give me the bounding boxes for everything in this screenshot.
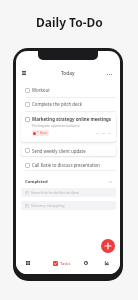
staticText: Marketing strategy online meetings	[32, 116, 112, 122]
staticText: Complete the pitch deck	[32, 101, 82, 107]
button[interactable]: Workout	[16, 83, 120, 97]
button[interactable]: More options	[104, 68, 115, 80]
button[interactable]: Schedule	[77, 255, 95, 271]
staticText: Completed	[25, 179, 48, 185]
button[interactable]: Task action	[101, 131, 105, 136]
button[interactable]: Complete the pitch deck	[16, 97, 120, 111]
staticText: Call Katie to discuss presentation	[32, 162, 100, 168]
button[interactable]: Task action	[107, 131, 111, 136]
button[interactable]: Call Katie to discuss presentation	[16, 158, 120, 172]
button[interactable]: Statistics	[98, 255, 116, 271]
staticText: Workout	[32, 87, 50, 93]
staticText: Tasks	[60, 261, 71, 266]
button[interactable]: Grocery shopping	[21, 201, 116, 210]
staticText: Send weekly client update	[32, 148, 86, 154]
button[interactable]: Marketing strategy online meetings	[21, 113, 116, 142]
staticText: Daily To-Do	[36, 14, 103, 30]
staticText: Today	[61, 70, 75, 77]
button[interactable]: Menu	[19, 67, 29, 79]
staticText: 1 Hour	[37, 131, 48, 135]
button[interactable]: Add task	[101, 239, 115, 253]
button[interactable]: Tasks	[46, 255, 78, 271]
button[interactable]: Save this to do list at 4pm	[21, 188, 116, 197]
button[interactable]: Dashboard	[19, 255, 37, 271]
button[interactable]: Task action	[95, 131, 99, 136]
staticText: Participate opinions balance	[32, 123, 80, 128]
button[interactable]: Send weekly client update	[21, 145, 116, 156]
staticText: Save this to do list at 4pm	[31, 190, 80, 195]
staticText: Grocery shopping	[31, 203, 65, 208]
